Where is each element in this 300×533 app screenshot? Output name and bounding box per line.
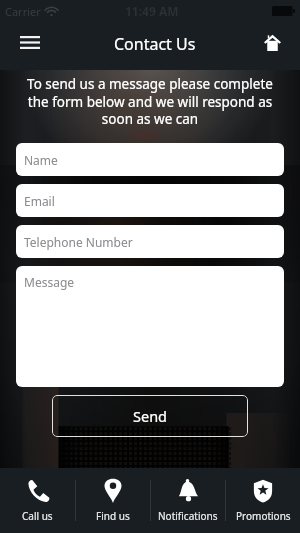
staticText: Email — [24, 193, 55, 209]
staticText: Contact Us — [114, 33, 196, 55]
staticText: Telephone Number — [24, 234, 133, 250]
button[interactable]: Find us — [76, 468, 150, 533]
staticText: Notifications — [158, 509, 218, 523]
button[interactable]: Message — [16, 266, 284, 387]
button[interactable]: Menu — [14, 29, 48, 55]
button[interactable]: Notifications — [151, 468, 225, 533]
staticText: To send us a message please complete the… — [0, 75, 300, 128]
staticText: Promotions — [236, 509, 291, 523]
staticText: Message — [24, 274, 75, 290]
staticText: Name — [24, 152, 58, 168]
button[interactable]: Home — [260, 30, 284, 54]
staticText: 11:49 AM — [125, 3, 179, 19]
staticText: Find us — [96, 509, 130, 523]
button[interactable]: Name — [16, 143, 284, 176]
button[interactable]: Telephone Number — [16, 225, 284, 258]
staticText: Call us — [22, 509, 53, 523]
staticText: Send — [133, 406, 168, 426]
button[interactable]: Promotions — [226, 468, 300, 533]
button[interactable]: Call us — [0, 468, 75, 533]
button[interactable]: Send — [52, 395, 248, 437]
button[interactable]: Email — [16, 184, 284, 217]
staticText: Carrier — [5, 4, 41, 19]
